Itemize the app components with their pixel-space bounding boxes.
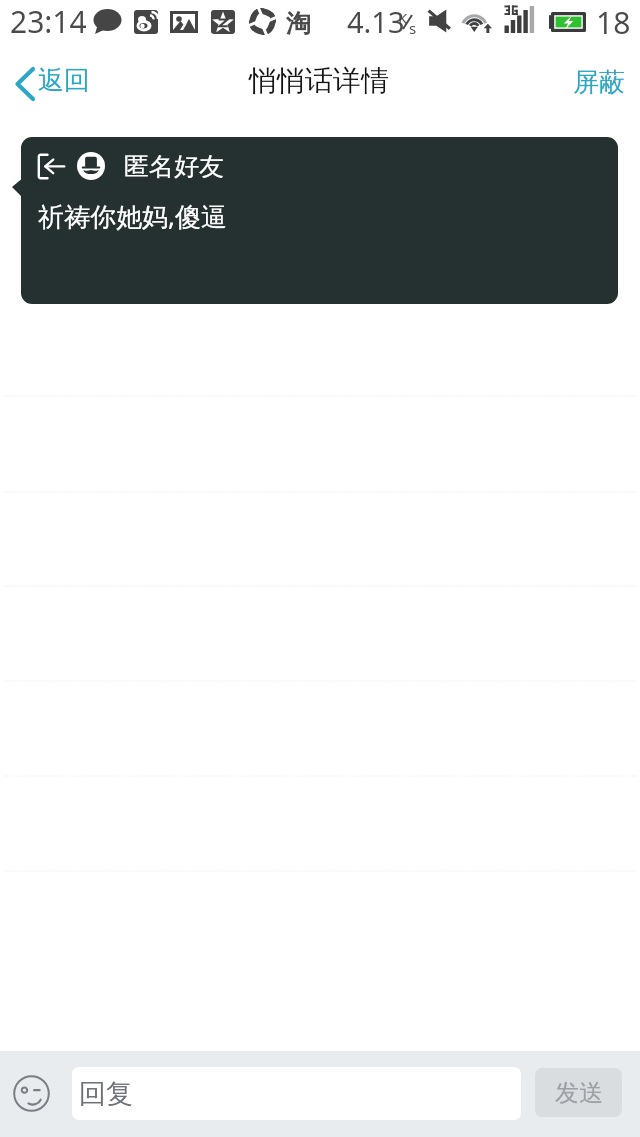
staticText: 返回 <box>38 64 90 97</box>
staticText: s <box>409 18 417 38</box>
staticText: 屏蔽 <box>573 66 625 99</box>
staticText: 回复 <box>79 1077 133 1111</box>
button[interactable]: 返回 <box>0 48 108 112</box>
staticText: 18 <box>596 2 631 43</box>
staticText: 23:14 <box>10 1 87 42</box>
staticText: K <box>398 8 408 28</box>
button[interactable]: 屏蔽 <box>555 50 640 114</box>
staticText: 悄悄话详情 <box>249 63 389 98</box>
button[interactable]: 发送 <box>535 1068 622 1117</box>
button[interactable]: Emoji <box>6 1068 56 1118</box>
button[interactable]: 匿名好友 <box>21 137 618 304</box>
staticText: 发送 <box>555 1078 603 1108</box>
staticText: 淘 <box>286 8 311 39</box>
staticText: 祈祷你她妈,傻逼 <box>38 198 227 234</box>
staticText: 匿名好友 <box>124 151 224 182</box>
staticText: 4.13 <box>347 2 405 41</box>
button[interactable]: 回复 <box>72 1067 521 1120</box>
